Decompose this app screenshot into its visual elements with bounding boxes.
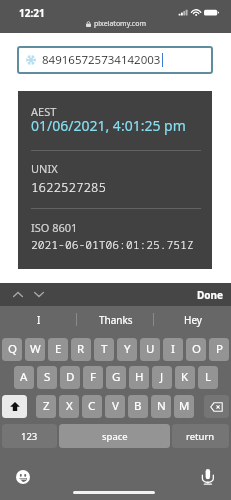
- button[interactable]: Shift: [2, 395, 27, 418]
- staticText: I: [37, 313, 41, 327]
- staticText: T: [101, 341, 108, 357]
- staticText: J: [160, 369, 164, 385]
- staticText: C: [88, 398, 96, 414]
- staticText: A: [20, 369, 28, 385]
- staticText: AEST: [31, 104, 57, 119]
- staticText: Z: [43, 398, 50, 414]
- button[interactable]: K: [175, 366, 195, 389]
- staticText: N: [157, 398, 166, 414]
- staticText: I: [171, 341, 175, 357]
- staticText: K: [181, 369, 189, 385]
- button[interactable]: D: [60, 366, 80, 389]
- staticText: 01/06/2021, 4:01:25 pm: [31, 116, 186, 135]
- button[interactable]: M: [174, 395, 194, 418]
- button[interactable]: W: [25, 338, 45, 361]
- staticText: H: [135, 369, 144, 385]
- staticText: P: [216, 341, 223, 357]
- button[interactable]: S: [37, 366, 57, 389]
- button[interactable]: C: [82, 395, 102, 418]
- staticText: B: [134, 398, 142, 414]
- button[interactable]: N: [151, 395, 171, 418]
- staticText: space: [102, 430, 128, 443]
- button[interactable]: Hey: [154, 306, 231, 332]
- staticText: 2021-06-01T06:01:25.751Z: [31, 237, 194, 252]
- button[interactable]: Done: [188, 283, 231, 306]
- button[interactable]: I: [163, 338, 183, 361]
- button[interactable]: Previous field: [7, 283, 28, 306]
- staticText: UNIX: [31, 161, 58, 176]
- button[interactable]: F: [83, 366, 103, 389]
- staticText: M: [179, 398, 190, 414]
- staticText: U: [146, 341, 155, 357]
- button[interactable]: Dictation: [200, 467, 216, 483]
- staticText: Q: [8, 341, 17, 357]
- staticText: return: [186, 430, 215, 443]
- staticText: L: [205, 369, 212, 385]
- staticText: F: [90, 369, 96, 385]
- button[interactable]: A: [14, 366, 34, 389]
- button[interactable]: Y: [117, 338, 137, 361]
- staticText: Hey: [184, 313, 202, 327]
- button[interactable]: Backspace: [204, 395, 229, 418]
- staticText: 123: [21, 430, 38, 443]
- button[interactable]: space: [59, 424, 170, 448]
- staticText: G: [112, 369, 121, 385]
- staticText: V: [112, 398, 119, 414]
- staticText: X: [66, 398, 73, 414]
- staticText: Thanks: [99, 313, 133, 327]
- staticText: 12:21: [19, 6, 45, 20]
- button[interactable]: return: [172, 424, 229, 448]
- button[interactable]: R: [71, 338, 91, 361]
- staticText: 849165725734142003: [42, 52, 161, 68]
- button[interactable]: Emoji: [15, 469, 31, 485]
- staticText: W: [30, 341, 41, 357]
- button[interactable]: 849165725734142003: [17, 46, 213, 74]
- staticText: O: [192, 341, 201, 357]
- button[interactable]: L: [198, 366, 218, 389]
- button[interactable]: T: [94, 338, 114, 361]
- button[interactable]: I: [0, 306, 77, 332]
- button[interactable]: Z: [36, 395, 56, 418]
- staticText: Done: [197, 288, 224, 302]
- button[interactable]: V: [105, 395, 125, 418]
- button[interactable]: P: [209, 338, 229, 361]
- staticText: E: [55, 341, 62, 357]
- button[interactable]: J: [152, 366, 172, 389]
- button[interactable]: G: [106, 366, 126, 389]
- staticText: Y: [124, 341, 131, 357]
- button[interactable]: B: [128, 395, 148, 418]
- button[interactable]: O: [186, 338, 206, 361]
- button[interactable]: E: [48, 338, 68, 361]
- button[interactable]: H: [129, 366, 149, 389]
- button[interactable]: 123: [2, 424, 57, 448]
- staticText: R: [77, 341, 85, 357]
- button[interactable]: Next field: [28, 283, 49, 306]
- button[interactable]: Q: [2, 338, 22, 361]
- staticText: S: [44, 369, 51, 385]
- staticText: pixelatomy.com: [94, 19, 146, 29]
- button[interactable]: Thanks: [77, 306, 154, 332]
- staticText: 1622527285: [31, 179, 107, 196]
- staticText: ISO 8601: [31, 220, 78, 235]
- button[interactable]: X: [59, 395, 79, 418]
- button[interactable]: U: [140, 338, 160, 361]
- staticText: D: [66, 369, 75, 385]
